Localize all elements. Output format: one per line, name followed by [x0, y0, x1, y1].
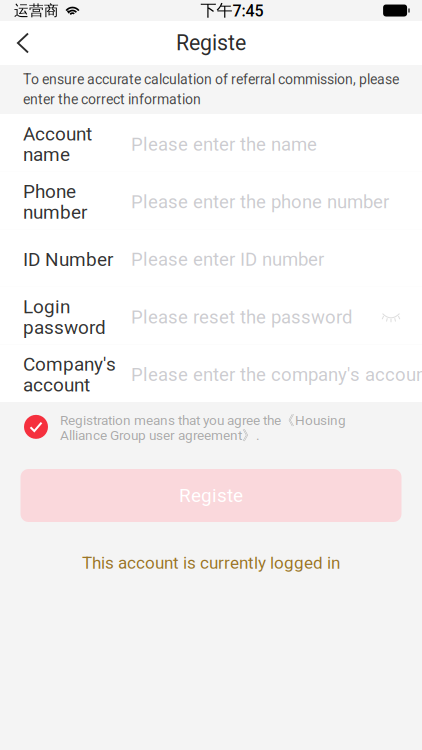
button[interactable]: Phone [0, 172, 422, 229]
button[interactable]: Back [0, 21, 46, 65]
staticText: Registe [179, 484, 243, 507]
button[interactable]: Registration means that you agree the《Ho… [0, 402, 422, 454]
button[interactable]: Login [0, 287, 422, 344]
staticText: Please enter the company's account [131, 364, 422, 385]
staticText: Please enter ID number [131, 249, 324, 270]
staticText: Company's [23, 353, 116, 375]
staticText: To ensure accurate calculation of referr… [23, 71, 399, 88]
staticText: Account [23, 123, 92, 145]
staticText: Alliance Group user agreement》. [60, 427, 260, 444]
staticText: Registe [176, 30, 246, 55]
button[interactable]: ID Number [0, 229, 422, 287]
staticText: Please enter the phone number [131, 191, 389, 213]
staticText: name [23, 144, 70, 166]
staticText: Please reset the password [131, 306, 352, 328]
staticText: 下午7:45 [200, 0, 263, 21]
staticText: account [23, 374, 90, 396]
button[interactable]: Company's [0, 344, 422, 402]
staticText: number [23, 201, 87, 223]
staticText: This account is currently logged in [82, 553, 340, 573]
staticText: Please enter the name [131, 133, 317, 155]
staticText: Login [23, 296, 70, 318]
staticText: password [23, 316, 106, 339]
staticText: enter the correct information [23, 91, 201, 108]
staticText: ID Number [23, 248, 113, 271]
button[interactable]: Registe [20, 469, 401, 522]
staticText: Phone [23, 180, 76, 203]
staticText: 运营商 [14, 1, 59, 20]
staticText: Registration means that you agree the《Ho… [60, 412, 346, 429]
button[interactable]: Account [0, 114, 422, 172]
